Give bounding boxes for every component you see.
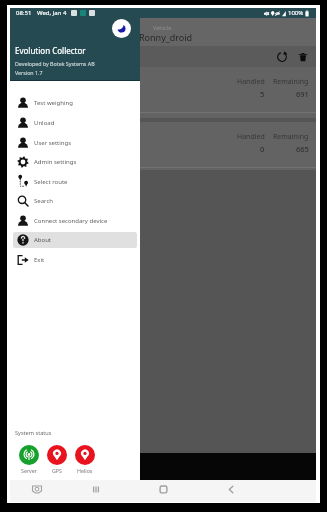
button[interactable]: Delete [293,47,312,66]
staticText: 0 [260,144,265,154]
staticText: Handled [237,77,265,87]
staticText: Version 1.7 [15,69,43,76]
button[interactable]: Helios [71,445,99,474]
button[interactable]: GPS [43,445,71,474]
staticText: 5 [260,89,265,99]
staticText: User settings [34,139,72,147]
staticText: System status [15,429,52,437]
staticText: Connect secondary device [34,217,108,225]
staticText: 08:51 [16,9,32,17]
button[interactable]: Unload [13,115,137,131]
staticText: Remaining [273,77,309,87]
staticText: Search [34,197,53,205]
staticText: Vehicle [153,24,172,31]
button[interactable]: Test weighing [13,95,137,111]
staticText: Server [21,467,37,474]
staticText: Test weighing [34,99,73,107]
button[interactable]: Refresh [272,47,291,66]
staticText: Download route [21,462,71,471]
button[interactable]: Server [15,445,43,474]
staticText: About [34,236,52,244]
staticText: 665 [296,144,309,154]
staticText: Wed, Jan 4 [37,9,67,17]
button[interactable]: Search [13,193,137,209]
staticText: Ronny_droid [139,31,193,43]
button[interactable]: Select route [13,174,137,190]
staticText: Developed by Botek Systems AB [15,60,95,67]
staticText: Unload [34,119,55,127]
button[interactable]: About [13,232,137,248]
button[interactable]: Admin settings [13,154,137,170]
staticText: Remaining [273,132,309,142]
staticText: Admin settings [34,158,77,166]
staticText: Handled [237,132,265,142]
staticText: 100% [288,9,304,17]
button[interactable]: User settings [13,135,137,151]
button[interactable]: Download route [10,453,316,480]
staticText: Exit [34,256,45,264]
button[interactable]: Connect secondary device [13,213,137,229]
staticText: Evolution Collector [15,45,86,56]
button[interactable]: Exit [13,252,137,268]
staticText: Helios [77,467,93,474]
staticText: 691 [296,89,309,99]
button[interactable]: Toggle dark mode [112,19,131,38]
staticText: GPS [52,467,62,474]
staticText: Select route [34,178,68,186]
